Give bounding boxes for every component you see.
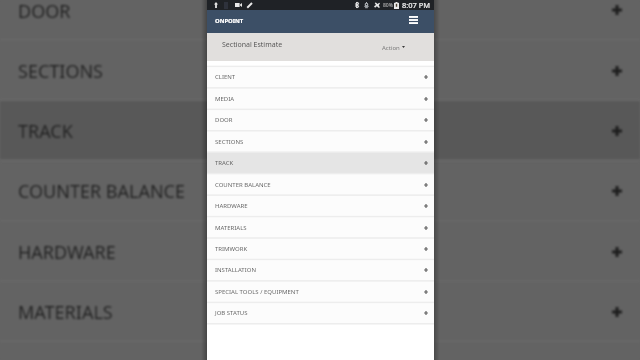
- button[interactable]: TRIMWORK: [207, 238, 434, 259]
- staticText: COUNTER BALANCE: [215, 181, 271, 189]
- staticText: MEDIA: [215, 95, 235, 103]
- button[interactable]: SPECIAL TOOLS / EQUIPMENT: [207, 281, 434, 302]
- button[interactable]: HARDWARE: [207, 195, 434, 216]
- staticText: TRIMWORK: [215, 245, 248, 253]
- staticText: JOB STATUS: [215, 309, 248, 317]
- staticText: COUNTER BALANCE: [18, 179, 186, 203]
- staticText: HARDWARE: [18, 240, 116, 264]
- staticText: MATERIALS: [215, 224, 247, 232]
- button[interactable]: Action: [378, 40, 412, 56]
- staticText: INSTALLATION: [215, 266, 256, 274]
- button[interactable]: Open navigation menu: [405, 12, 421, 27]
- button[interactable]: INSTALLATION: [207, 259, 434, 280]
- staticText: DOOR: [215, 116, 233, 124]
- staticText: TRACK: [18, 119, 73, 143]
- button[interactable]: JOB STATUS: [207, 302, 434, 323]
- button[interactable]: MATERIALS: [207, 217, 434, 238]
- staticText: ONPOINT: [215, 17, 244, 25]
- staticText: MATERIALS: [18, 300, 113, 324]
- staticText: DOOR: [18, 0, 71, 23]
- staticText: SPECIAL TOOLS / EQUIPMENT: [215, 288, 299, 296]
- button[interactable]: COUNTER BALANCE: [207, 174, 434, 195]
- staticText: SECTIONS: [18, 59, 103, 83]
- staticText: SECTIONS: [215, 138, 244, 146]
- button[interactable]: CLIENT: [207, 66, 434, 87]
- staticText: Sectional Estimate: [222, 40, 283, 50]
- staticText: Action: [382, 44, 400, 52]
- staticText: 8:07 PM: [402, 0, 431, 10]
- staticText: CLIENT: [215, 73, 236, 81]
- button[interactable]: SECTIONS: [207, 131, 434, 152]
- staticText: TRACK: [215, 159, 234, 167]
- button[interactable]: TRACK: [207, 152, 434, 173]
- button[interactable]: MEDIA: [207, 88, 434, 109]
- button[interactable]: DOOR: [207, 109, 434, 130]
- staticText: 80%: [383, 2, 393, 9]
- staticText: HARDWARE: [215, 202, 248, 210]
